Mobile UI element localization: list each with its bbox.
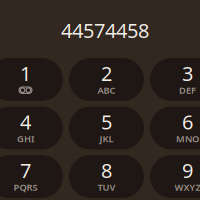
- button[interactable]: 1: [0, 58, 63, 101]
- staticText: 1: [20, 60, 31, 87]
- button[interactable]: 4: [0, 106, 63, 149]
- button[interactable]: 3: [150, 58, 200, 101]
- staticText: 44574458: [61, 17, 149, 44]
- staticText: 8: [101, 157, 112, 184]
- staticText: 9: [182, 157, 193, 184]
- button[interactable]: 7: [0, 155, 63, 198]
- button[interactable]: 5: [69, 106, 144, 149]
- staticText: 6: [182, 108, 193, 135]
- staticText: 5: [101, 108, 112, 135]
- staticText: GHI: [17, 132, 34, 145]
- staticText: MNO: [176, 132, 199, 145]
- staticText: JKL: [99, 132, 113, 145]
- staticText: WXYZ: [174, 181, 200, 193]
- staticText: 7: [20, 157, 31, 184]
- staticText: PQRS: [13, 181, 37, 193]
- button[interactable]: 6: [150, 106, 200, 149]
- button[interactable]: 2: [69, 58, 144, 101]
- staticText: 4: [20, 108, 31, 135]
- button[interactable]: 8: [69, 155, 144, 198]
- staticText: 2: [101, 60, 112, 87]
- staticText: 3: [182, 60, 193, 87]
- button[interactable]: 9: [150, 155, 200, 198]
- staticText: ABC: [97, 84, 115, 96]
- staticText: TUV: [97, 181, 115, 193]
- staticText: DEF: [179, 84, 196, 96]
